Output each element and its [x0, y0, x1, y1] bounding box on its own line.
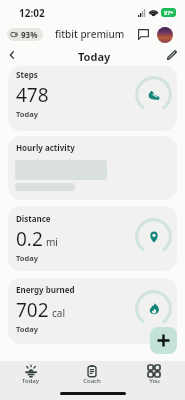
- staticText: cal: [52, 306, 65, 320]
- button[interactable]: Back: [4, 47, 20, 63]
- staticText: 93%: [21, 29, 38, 40]
- staticText: Coach: [83, 377, 101, 385]
- staticText: Today: [16, 324, 39, 334]
- staticText: Today: [16, 109, 39, 119]
- staticText: 97+: [164, 9, 174, 16]
- staticText: 478: [16, 82, 49, 108]
- staticText: Today: [78, 49, 111, 64]
- staticText: Hourly activity: [16, 142, 75, 153]
- button[interactable]: Add: [150, 327, 177, 354]
- button[interactable]: Hourly activity: [8, 136, 177, 200]
- button[interactable]: Energy burned: [8, 278, 177, 344]
- button[interactable]: Steps: [8, 66, 177, 131]
- staticText: Today: [22, 377, 39, 385]
- staticText: Today: [16, 253, 39, 263]
- button[interactable]: Coach: [61, 361, 123, 388]
- button[interactable]: Distance: [8, 206, 177, 271]
- button[interactable]: Today: [0, 361, 61, 388]
- staticText: You: [149, 377, 160, 385]
- staticText: mi: [46, 235, 58, 249]
- button[interactable]: 93%: [7, 28, 43, 41]
- staticText: 0.2: [16, 226, 43, 252]
- staticText: 702: [16, 297, 49, 323]
- staticText: Energy burned: [16, 284, 75, 295]
- button[interactable]: Profile: [157, 27, 173, 43]
- staticText: 12:02: [19, 6, 45, 20]
- button[interactable]: Edit: [164, 47, 180, 63]
- button[interactable]: You: [123, 361, 185, 388]
- staticText: fitbit premium: [55, 27, 125, 41]
- staticText: Steps: [16, 69, 38, 80]
- button[interactable]: Messages: [135, 26, 152, 43]
- staticText: Distance: [16, 213, 51, 224]
